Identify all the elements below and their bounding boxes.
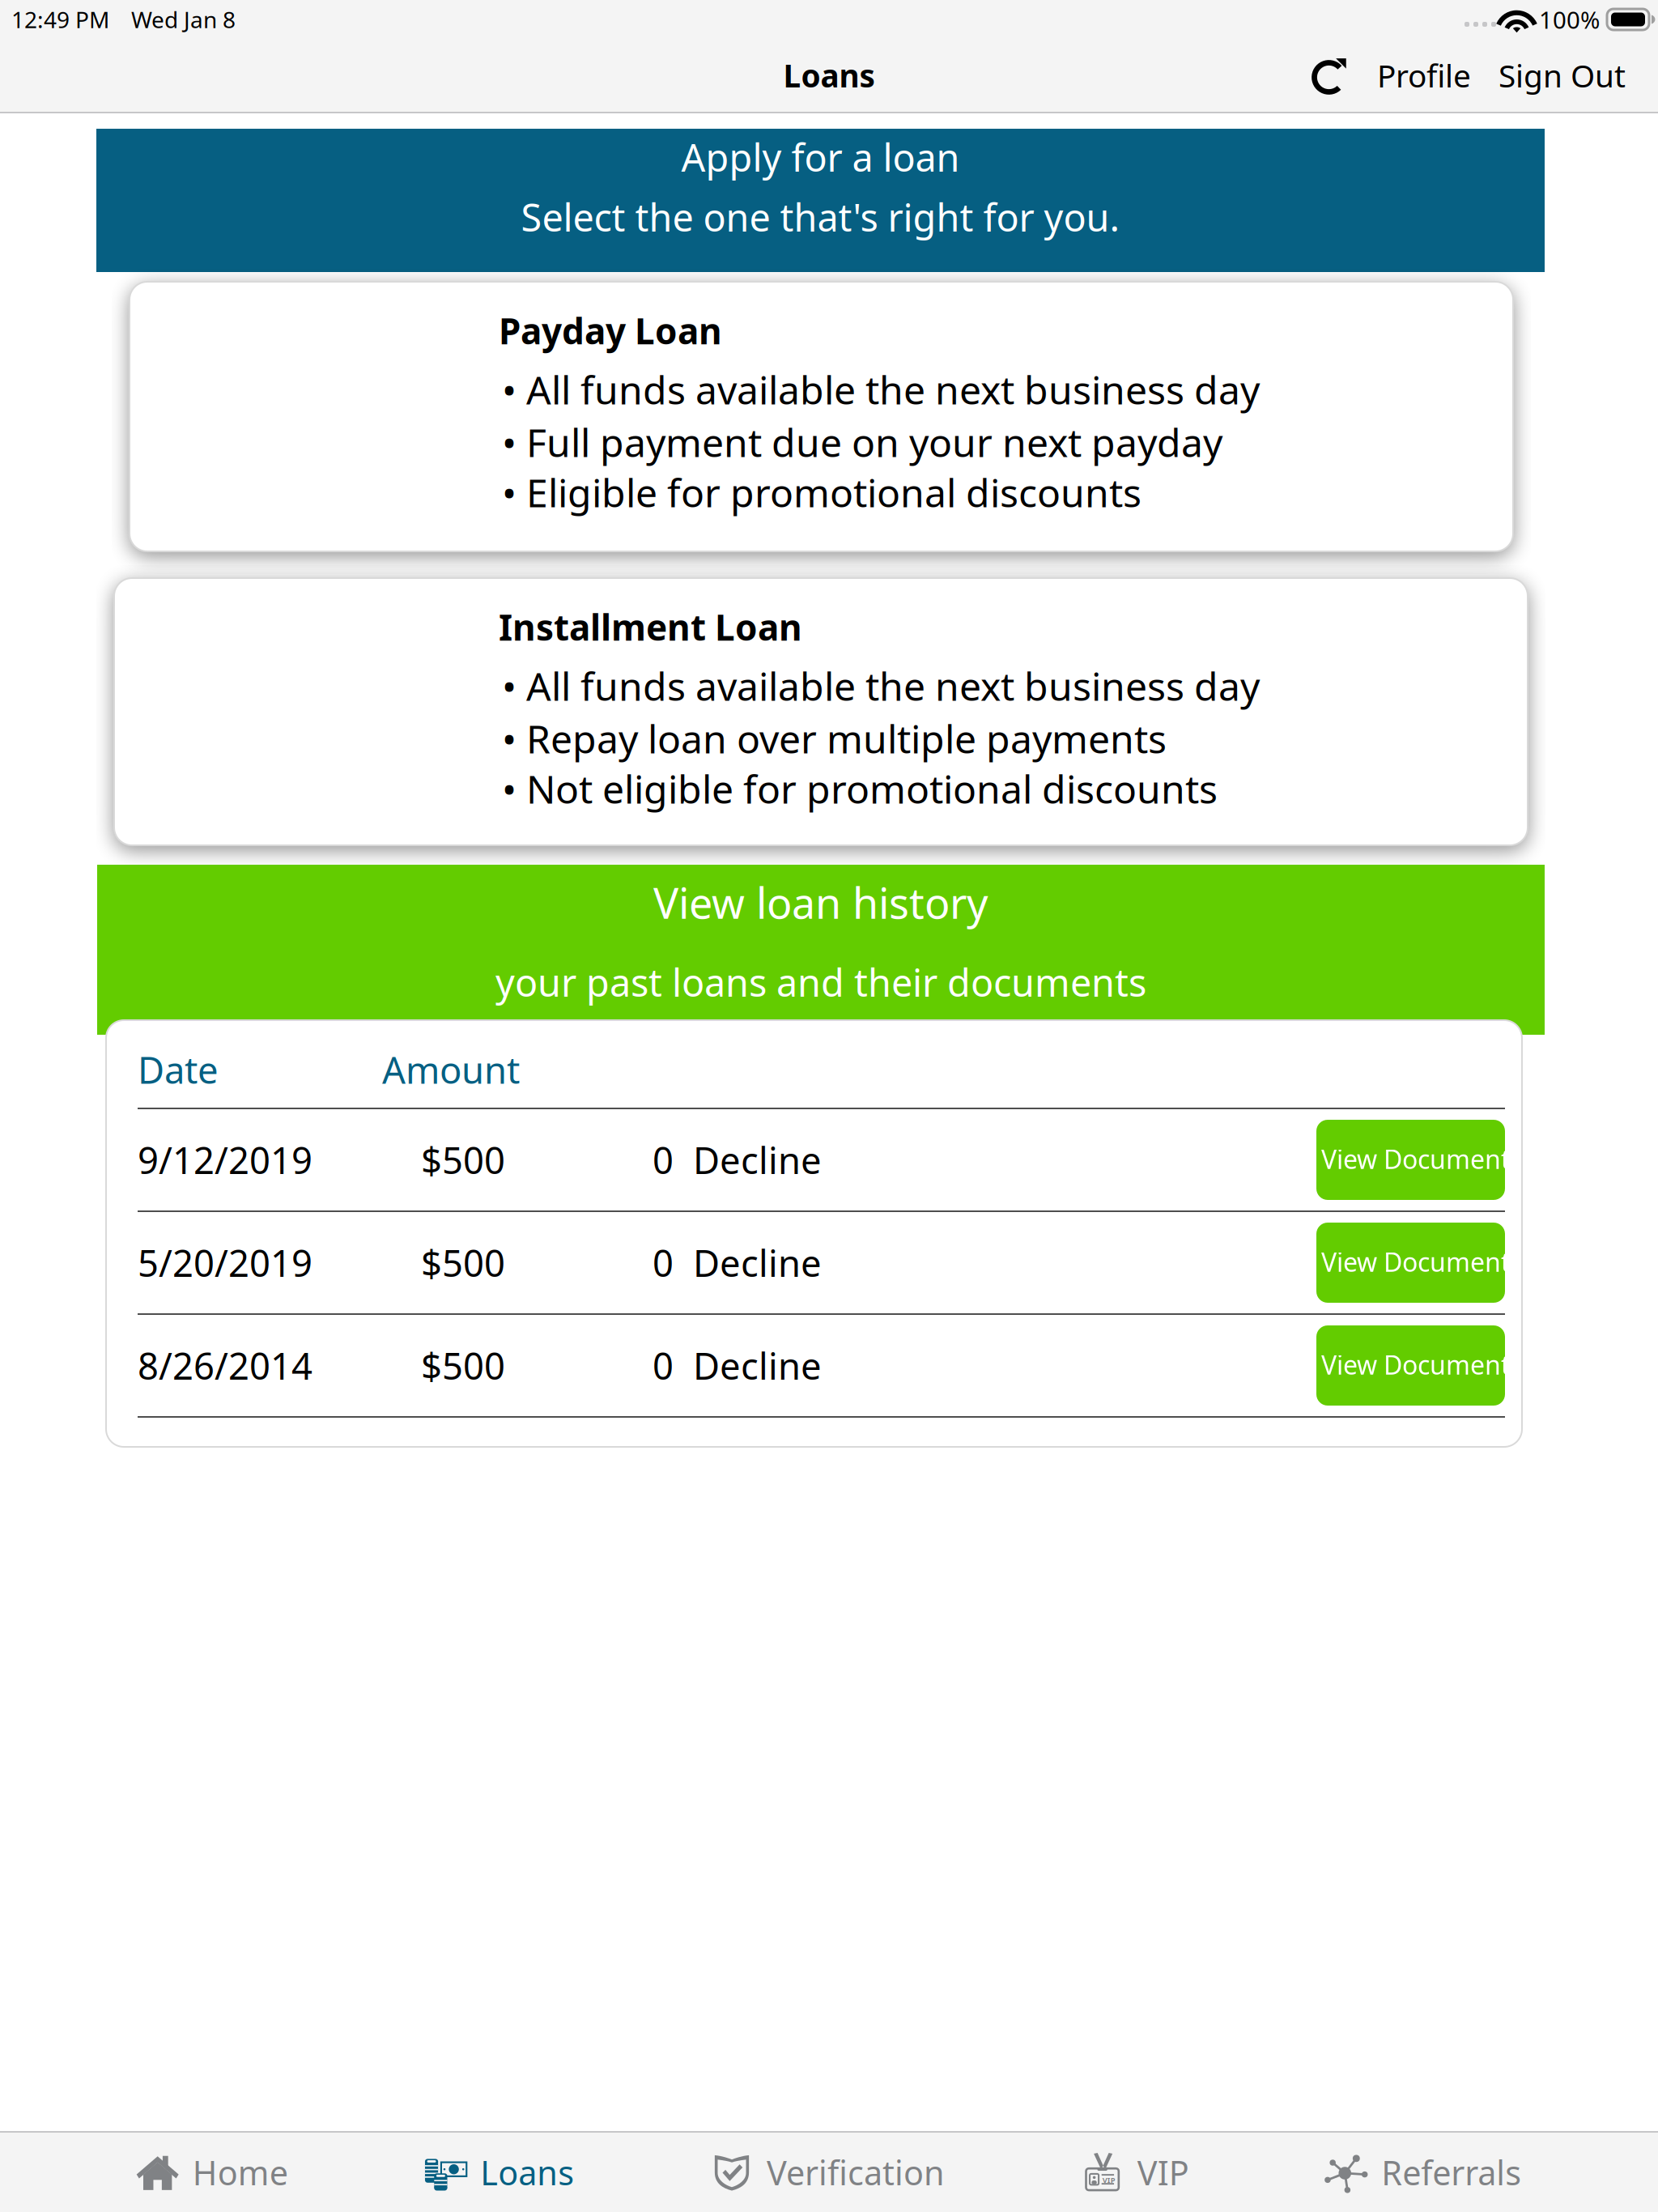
staticText: Loans — [783, 54, 875, 96]
staticText: View loan history — [653, 874, 988, 930]
staticText: 9/12/2019 — [138, 1135, 312, 1184]
staticText: $500 — [421, 1341, 505, 1390]
button[interactable]: Sign Out — [1485, 39, 1626, 112]
staticText: Payday Loan — [499, 307, 722, 354]
staticText: your past loans and their documents — [495, 957, 1146, 1007]
staticText: • Repay loan over multiple payments — [502, 713, 1167, 764]
staticText: • Eligible for promotional discounts — [502, 466, 1141, 518]
button[interactable]: Profile — [1363, 39, 1485, 112]
staticText: 100% — [1539, 4, 1600, 35]
staticText: 8/26/2014 — [138, 1341, 312, 1390]
staticText: View Documents — [1321, 1142, 1523, 1176]
staticText: Home — [192, 2150, 288, 2195]
button[interactable]: Installment Loan — [114, 578, 1528, 845]
staticText: VIP — [1102, 2175, 1115, 2185]
staticText: • Not eligible for promotional discounts — [502, 763, 1218, 814]
staticText: Sign Out — [1499, 54, 1626, 96]
button[interactable]: Home — [137, 2133, 288, 2212]
button[interactable]: Verification — [711, 2133, 945, 2212]
staticText: $500 — [421, 1135, 505, 1184]
staticText: 0 Decline — [653, 1135, 822, 1184]
button[interactable]: View Documents — [1316, 1223, 1505, 1303]
staticText: Profile — [1377, 54, 1471, 96]
staticText: 12:49 PM — [11, 4, 109, 34]
staticText: Date — [138, 1045, 219, 1094]
button[interactable]: Referrals — [1326, 2133, 1521, 2212]
button[interactable]: Apply for a loan — [96, 129, 1545, 272]
staticText: VIP — [1137, 2150, 1189, 2195]
staticText: • All funds available the next business … — [502, 660, 1260, 711]
staticText: Loans — [480, 2150, 574, 2195]
staticText: • All funds available the next business … — [502, 364, 1260, 415]
staticText: $500 — [421, 1238, 505, 1287]
staticText: 5/20/2019 — [138, 1238, 312, 1287]
button[interactable]: Payday Loan — [130, 282, 1513, 551]
button[interactable]: Loans — [424, 2133, 574, 2212]
staticText: View Documents — [1321, 1244, 1523, 1279]
staticText: Wed Jan 8 — [131, 4, 236, 34]
staticText: 0 Decline — [653, 1341, 822, 1390]
button[interactable]: View loan history — [97, 865, 1545, 1035]
staticText: Referrals — [1381, 2150, 1521, 2195]
staticText: View Documents — [1321, 1347, 1523, 1382]
staticText: 0 Decline — [653, 1238, 822, 1287]
button[interactable]: Refresh — [1297, 39, 1363, 112]
staticText: Verification — [767, 2150, 945, 2195]
button[interactable]: VIP — [1081, 2133, 1189, 2212]
staticText: Amount — [382, 1045, 520, 1094]
staticText: Apply for a loan — [681, 132, 960, 182]
staticText: Select the one that's right for you. — [521, 192, 1120, 242]
staticText: • Full payment due on your next payday — [502, 416, 1222, 468]
staticText: Installment Loan — [499, 603, 802, 650]
button[interactable]: View Documents — [1316, 1120, 1505, 1200]
button[interactable]: View Documents — [1316, 1325, 1505, 1406]
